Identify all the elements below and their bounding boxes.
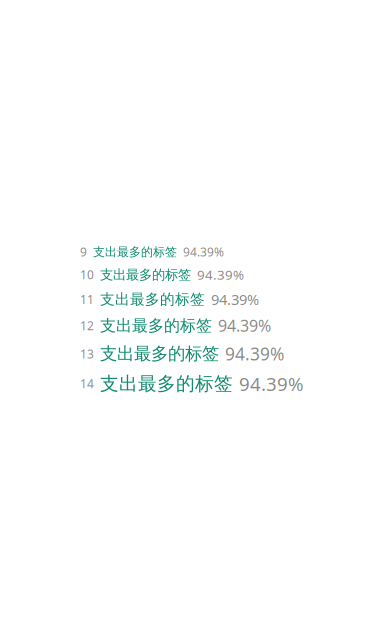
- staticText: 支出最多的标签: [93, 244, 177, 259]
- staticText: 12: [80, 318, 94, 334]
- staticText: 94.39%: [239, 371, 304, 396]
- staticText: 94.39%: [211, 290, 259, 309]
- staticText: 94.39%: [218, 315, 271, 336]
- staticText: 94.39%: [225, 342, 284, 365]
- staticText: 支出最多的标签: [100, 266, 191, 283]
- staticText: 13: [80, 346, 94, 362]
- staticText: 11: [80, 291, 94, 307]
- staticText: 94.39%: [197, 266, 244, 283]
- staticText: 9: [80, 244, 87, 260]
- staticText: 94.39%: [183, 244, 224, 260]
- staticText: 14: [80, 376, 94, 392]
- staticText: 支出最多的标签: [100, 316, 212, 335]
- staticText: 支出最多的标签: [100, 372, 233, 395]
- staticText: 支出最多的标签: [100, 343, 219, 364]
- staticText: 支出最多的标签: [100, 290, 205, 308]
- staticText: 10: [80, 267, 94, 283]
